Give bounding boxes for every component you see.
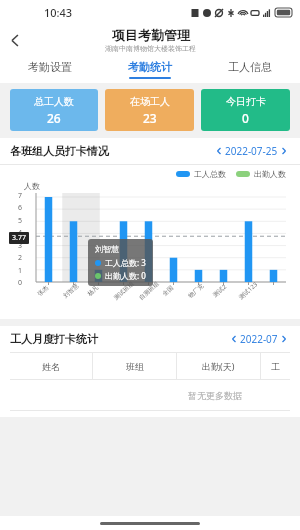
staticText: 工 (271, 361, 280, 372)
staticText: 26 (47, 110, 61, 126)
staticText: 刘智慧 (61, 282, 80, 300)
staticText: 暂无更多数据 (188, 390, 242, 401)
staticText: 姓名 (42, 361, 60, 372)
staticText: 张杰 (36, 284, 50, 298)
staticText: 项目考勤管理 (112, 27, 190, 43)
staticText: 23 (143, 110, 157, 126)
staticText: 2022-07-25 (225, 144, 278, 158)
staticText: 2 (18, 253, 23, 263)
staticText: 物厂党 (186, 282, 205, 300)
staticText: 工人总数 (194, 169, 226, 179)
button[interactable]: Back (0, 25, 30, 55)
button[interactable]: Next (278, 333, 290, 345)
staticText: 3.77 (12, 233, 26, 243)
staticText: 2022-07 (240, 332, 278, 346)
button[interactable]: Previous (213, 145, 225, 157)
staticText: 测试班组 (112, 280, 135, 302)
staticText: 考勤设置 (28, 60, 72, 74)
staticText: 刘智慧 (95, 244, 119, 254)
staticText: 自测班组 (137, 280, 160, 302)
button[interactable]: 在场工人 (105, 89, 194, 131)
button[interactable]: Previous (228, 333, 240, 345)
staticText: 测试2 (211, 282, 228, 299)
staticText: 考勤统计 (128, 60, 172, 74)
staticText: 出勤人数: 0 (105, 270, 146, 281)
button[interactable]: 考勤统计 (100, 56, 200, 83)
staticText: 全国 (161, 284, 175, 298)
staticText: 7 (18, 191, 23, 201)
staticText: 工人信息 (228, 60, 272, 74)
staticText: 总工人数 (34, 95, 74, 108)
staticText: 杨凡 (86, 284, 100, 298)
staticText: 人数 (24, 181, 40, 191)
button[interactable]: 总工人数 (10, 89, 98, 131)
staticText: 4 (18, 228, 23, 238)
staticText: 湖南中南博物馆大楼装饰工程 (105, 44, 196, 53)
staticText: 1 (18, 266, 23, 276)
staticText: 0 (242, 110, 249, 126)
staticText: 工人总数: 3 (105, 257, 146, 268)
button[interactable]: 考勤设置 (0, 56, 100, 83)
button[interactable]: 工人信息 (200, 56, 300, 83)
staticText: 测试123 (237, 280, 259, 301)
staticText: 6 (18, 203, 23, 213)
button[interactable]: 今日打卡 (201, 89, 290, 131)
staticText: 班组 (126, 361, 144, 372)
staticText: 0 (18, 278, 23, 288)
staticText: 5 (18, 216, 23, 226)
button[interactable]: Next (278, 145, 290, 157)
staticText: 今日打卡 (226, 95, 266, 108)
staticText: 工人月度打卡统计 (10, 332, 98, 346)
staticText: 在场工人 (130, 95, 170, 108)
staticText: 出勤人数 (254, 169, 286, 179)
staticText: 10:43 (44, 5, 73, 20)
staticText: 出勤(天) (202, 360, 235, 372)
staticText: 3 (18, 241, 23, 251)
staticText: 各班组人员打卡情况 (10, 144, 109, 158)
